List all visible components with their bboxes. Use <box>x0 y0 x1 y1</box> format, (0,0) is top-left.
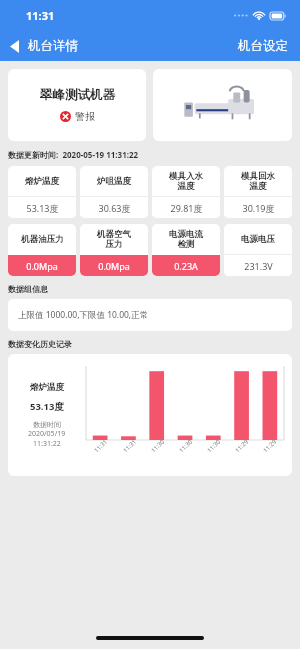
button[interactable]: Machine photo <box>153 69 292 141</box>
staticText: 机器油压力 <box>21 234 64 245</box>
staticText: 231.3V <box>244 260 273 272</box>
staticText: 11:30 <box>205 437 222 454</box>
button[interactable]: 上限值 1000.00,下限值 10.00,正常 <box>8 299 292 331</box>
button[interactable]: 机器油压力 <box>8 224 76 276</box>
staticText: 模具回水 温度 <box>241 171 275 192</box>
staticText: 数据组信息 <box>8 284 48 294</box>
button[interactable]: 熔炉温度 <box>8 354 292 476</box>
button[interactable]: 炉咀温度 <box>80 166 148 218</box>
button[interactable]: 模具入水 温度 <box>152 166 220 218</box>
staticText: 机器空气 压力 <box>97 229 131 250</box>
staticText: 炉咀温度 <box>97 176 131 187</box>
staticText: 11:29 <box>261 437 278 454</box>
staticText: 0.0Mpa <box>98 260 130 272</box>
staticText: 模具入水 温度 <box>169 171 203 192</box>
staticText: 熔炉温度 <box>30 382 64 393</box>
staticText: 熔炉温度 <box>25 176 59 187</box>
button[interactable]: 机器空气 压力 <box>80 224 148 276</box>
staticText: 电源电流 检测 <box>169 229 203 250</box>
staticText: 0.23A <box>174 260 198 272</box>
button[interactable]: 电源电流 检测 <box>152 224 220 276</box>
button[interactable]: 机台设定 <box>226 33 300 59</box>
button[interactable]: 电源电压 <box>224 224 292 276</box>
staticText: 11:31 <box>92 437 109 454</box>
staticText: 53.13度 <box>26 202 59 214</box>
staticText: 数据变化历史记录 <box>8 339 72 349</box>
staticText: 数据时间 <box>33 420 61 429</box>
staticText: 机台设定 <box>238 38 288 54</box>
staticText: 2020/05/19 <box>28 429 66 439</box>
staticText: 0.0Mpa <box>26 260 58 272</box>
staticText: 11:31 <box>26 8 55 23</box>
staticText: 11:31 <box>121 437 138 454</box>
staticText: 11:30 <box>149 437 166 454</box>
button[interactable]: 模具回水 温度 <box>224 166 292 218</box>
staticText: 上限值 1000.00,下限值 10.00,正常 <box>18 309 149 321</box>
staticText: 30.63度 <box>98 202 131 214</box>
staticText: 机台详情 <box>28 38 78 54</box>
staticText: 11:30 <box>177 437 194 454</box>
staticText: 53.13度 <box>30 400 64 413</box>
staticText: 11:29 <box>233 437 250 454</box>
staticText: 30.19度 <box>242 202 275 214</box>
staticText: 29.81度 <box>170 202 203 214</box>
other: Back <box>10 40 19 53</box>
button[interactable]: 翠峰测试机器 <box>8 69 146 141</box>
staticText: 翠峰测试机器 <box>40 87 115 103</box>
staticText: 数据更新时间: 2020-05-19 11:31:22 <box>8 149 139 160</box>
staticText: 电源电压 <box>241 234 275 245</box>
button[interactable]: Back <box>0 34 86 58</box>
staticText: 11:31:22 <box>33 439 61 449</box>
button[interactable]: 熔炉温度 <box>8 166 76 218</box>
staticText: 警报 <box>75 110 95 123</box>
